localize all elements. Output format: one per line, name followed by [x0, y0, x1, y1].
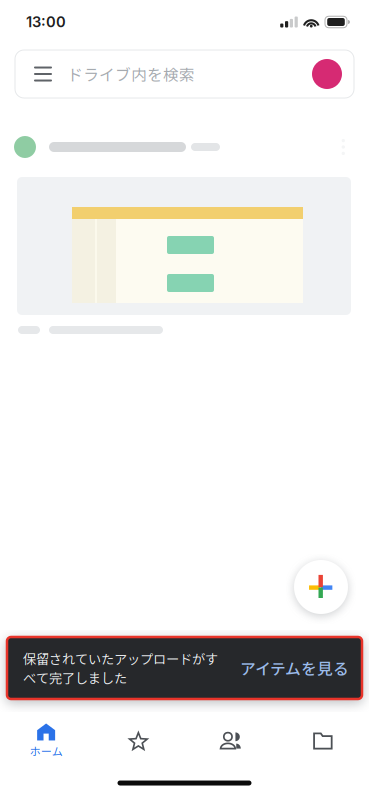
- staticText: ホーム: [30, 743, 63, 759]
- staticText: 13:00: [26, 13, 66, 31]
- button[interactable]: 共有アイテム: [184, 716, 277, 766]
- button[interactable]: ファイル: [277, 716, 369, 766]
- staticText: アイテムを見る: [240, 657, 349, 679]
- button[interactable]: アイテムを見る: [240, 649, 362, 687]
- staticText: 保留されていたアップロードがすべて完了しました: [23, 649, 218, 687]
- staticText: ドライブ内を検索: [67, 63, 195, 85]
- button[interactable]: スター付き: [92, 716, 184, 766]
- button[interactable]: 新規: [294, 560, 348, 614]
- button[interactable]: ホーム: [0, 716, 92, 766]
- button[interactable]: ドライブ内を検索: [0, 50, 369, 98]
